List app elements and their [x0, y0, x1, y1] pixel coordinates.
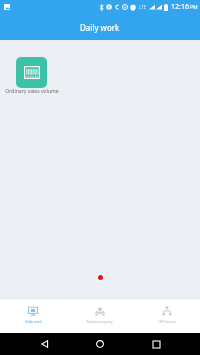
staticText: Daily work	[25, 319, 42, 324]
button[interactable]: Back	[34, 333, 56, 355]
staticText: HR Process	[158, 319, 176, 324]
staticText: Daily work	[80, 22, 120, 33]
staticText: 12:16	[171, 2, 189, 12]
staticText: LTE	[139, 4, 147, 10]
button[interactable]: Home	[89, 333, 111, 355]
staticText: Ordinary sales volume	[5, 88, 59, 95]
staticText: PM	[190, 4, 198, 11]
button[interactable]: Ordinary sales volume	[1, 57, 62, 95]
button[interactable]: Daily work	[0, 299, 66, 330]
staticText: Business inquiry	[86, 319, 113, 324]
button[interactable]: Business inquiry	[66, 299, 133, 330]
button[interactable]: Recents	[145, 333, 167, 355]
button[interactable]: HR Process	[133, 299, 200, 330]
